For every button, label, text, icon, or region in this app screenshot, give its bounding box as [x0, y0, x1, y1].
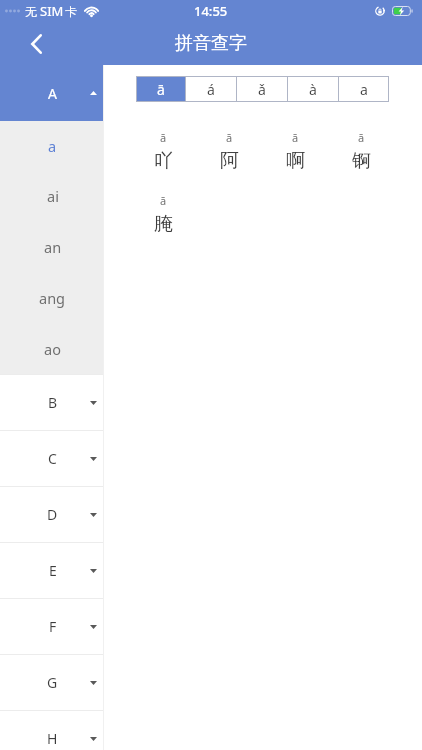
staticText: ā — [226, 130, 233, 145]
staticText: ai — [47, 186, 59, 206]
button[interactable]: ā — [130, 193, 196, 236]
staticText: ā — [157, 80, 165, 99]
button[interactable]: ā — [262, 130, 328, 173]
staticText: ang — [39, 288, 66, 308]
staticText: A — [48, 84, 57, 103]
staticText: 无 — [25, 4, 37, 19]
staticText: ā — [358, 130, 365, 145]
staticText: ǎ — [258, 80, 266, 99]
staticText: G — [47, 673, 58, 692]
button[interactable]: D — [0, 486, 103, 542]
staticText: ā — [292, 130, 299, 145]
staticText: á — [207, 80, 215, 99]
button[interactable]: ao — [0, 323, 103, 374]
button[interactable]: ǎ — [237, 76, 287, 102]
button[interactable]: ā — [130, 130, 196, 173]
staticText: B — [48, 393, 58, 412]
staticText: 卡 — [65, 4, 77, 19]
button[interactable]: G — [0, 654, 103, 710]
staticText: an — [44, 237, 62, 257]
button[interactable]: F — [0, 598, 103, 654]
button[interactable]: ai — [0, 171, 103, 221]
staticText: ā — [160, 130, 167, 145]
button[interactable]: à — [288, 76, 338, 102]
staticText: 吖 — [154, 149, 173, 173]
button[interactable]: C — [0, 430, 103, 486]
button[interactable]: á — [186, 76, 236, 102]
staticText: H — [47, 729, 58, 748]
staticText: F — [49, 617, 57, 636]
staticText: à — [309, 80, 317, 99]
button[interactable]: an — [0, 221, 103, 272]
button[interactable]: 返回 — [0, 22, 56, 65]
button[interactable]: ang — [0, 272, 103, 323]
button[interactable]: a — [339, 76, 389, 102]
button[interactable]: a — [0, 121, 103, 171]
staticText: 锕 — [352, 149, 371, 173]
button[interactable]: H — [0, 710, 103, 750]
staticText: C — [48, 449, 57, 468]
button[interactable]: ā — [136, 76, 185, 102]
staticText: SIM — [40, 2, 64, 20]
staticText: 腌 — [154, 212, 173, 236]
button[interactable]: A — [0, 65, 103, 121]
staticText: a — [360, 80, 368, 99]
button[interactable]: ā — [328, 130, 394, 173]
button[interactable]: B — [0, 374, 103, 430]
staticText: ā — [160, 193, 167, 208]
button[interactable]: ā — [196, 130, 262, 173]
staticText: D — [47, 505, 58, 524]
staticText: a — [48, 136, 57, 156]
staticText: 14:55 — [194, 2, 228, 20]
staticText: ao — [44, 339, 61, 359]
button[interactable]: E — [0, 542, 103, 598]
staticText: 拼音查字 — [175, 32, 247, 55]
staticText: E — [49, 561, 57, 580]
staticText: 阿 — [220, 149, 239, 173]
staticText: 啊 — [286, 149, 305, 173]
